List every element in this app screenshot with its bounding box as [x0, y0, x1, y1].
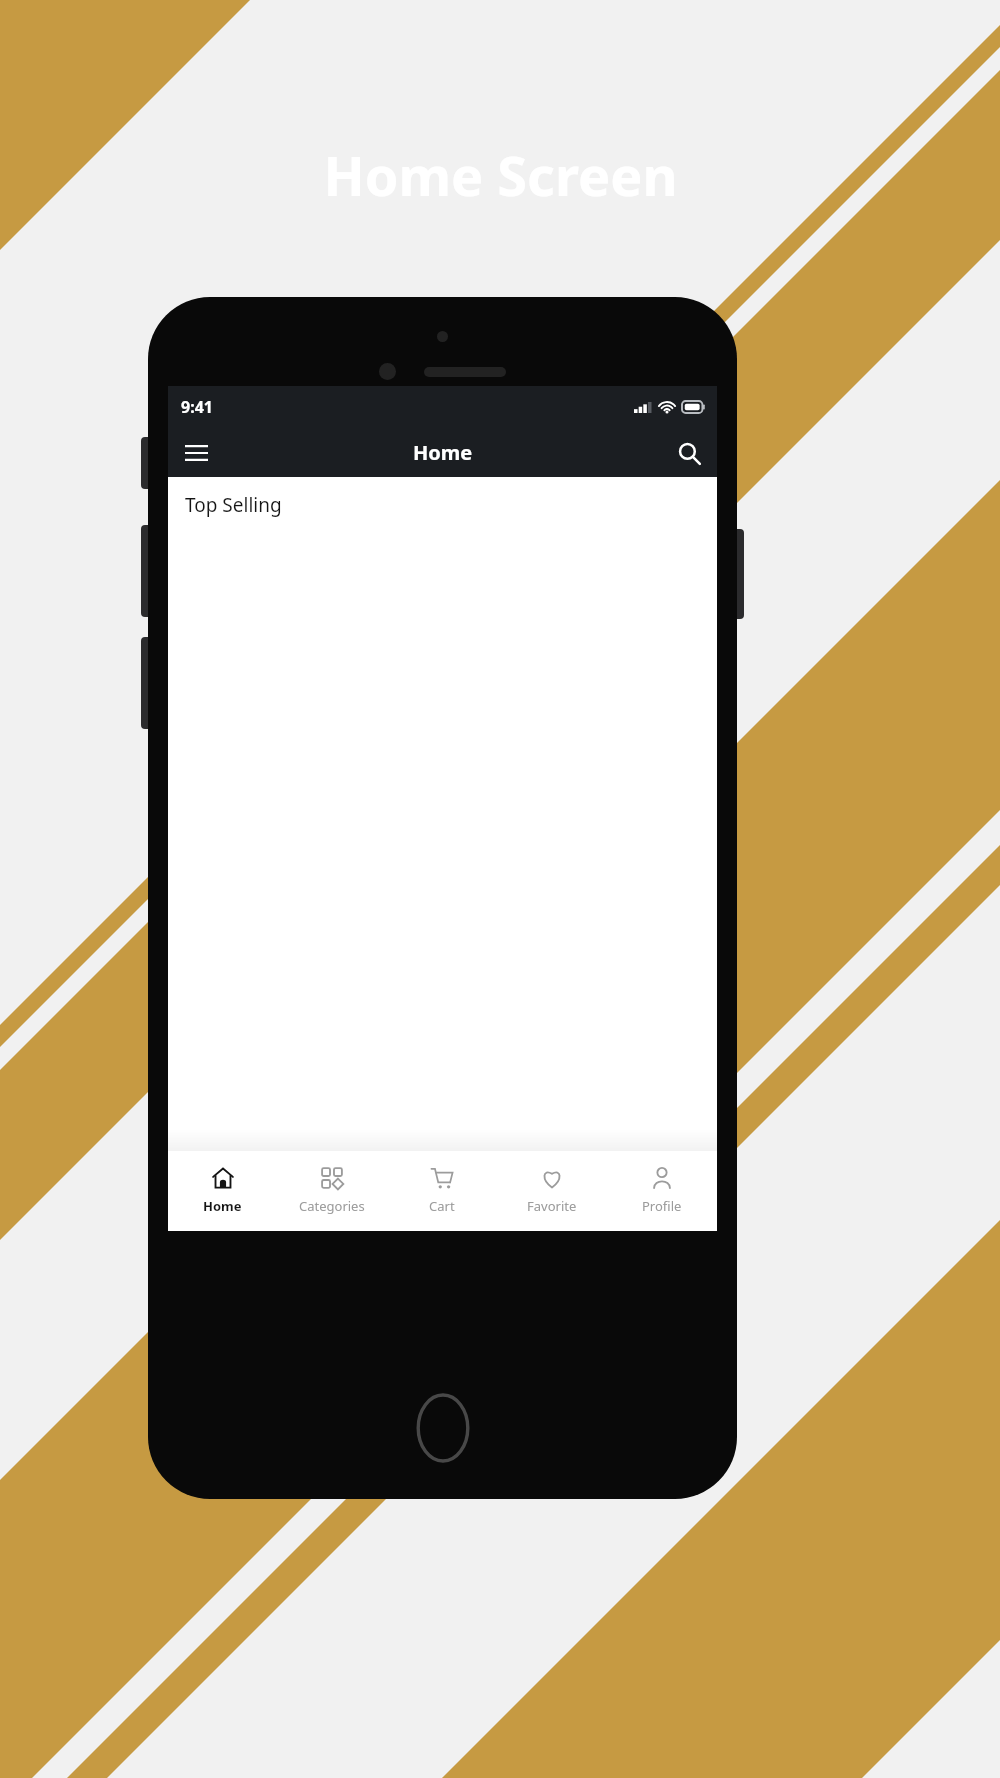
button[interactable]: Profile [607, 1151, 717, 1231]
staticText: Home [203, 1197, 242, 1215]
staticText: 9:41 [181, 396, 213, 418]
staticText: Profile [642, 1197, 682, 1215]
button[interactable]: Cart [387, 1151, 497, 1231]
staticText: Categories [299, 1197, 365, 1215]
button[interactable]: Menu [173, 430, 219, 476]
button[interactable]: Search [666, 430, 712, 476]
staticText: Favorite [527, 1197, 577, 1215]
button[interactable]: Favorite [497, 1151, 607, 1231]
staticText: Home Screen [323, 138, 678, 212]
button[interactable]: Home [168, 1151, 277, 1231]
button[interactable]: Categories [277, 1151, 387, 1231]
staticText: Top Selling [185, 492, 282, 518]
staticText: Cart [429, 1197, 455, 1215]
staticText: Home [413, 439, 473, 466]
